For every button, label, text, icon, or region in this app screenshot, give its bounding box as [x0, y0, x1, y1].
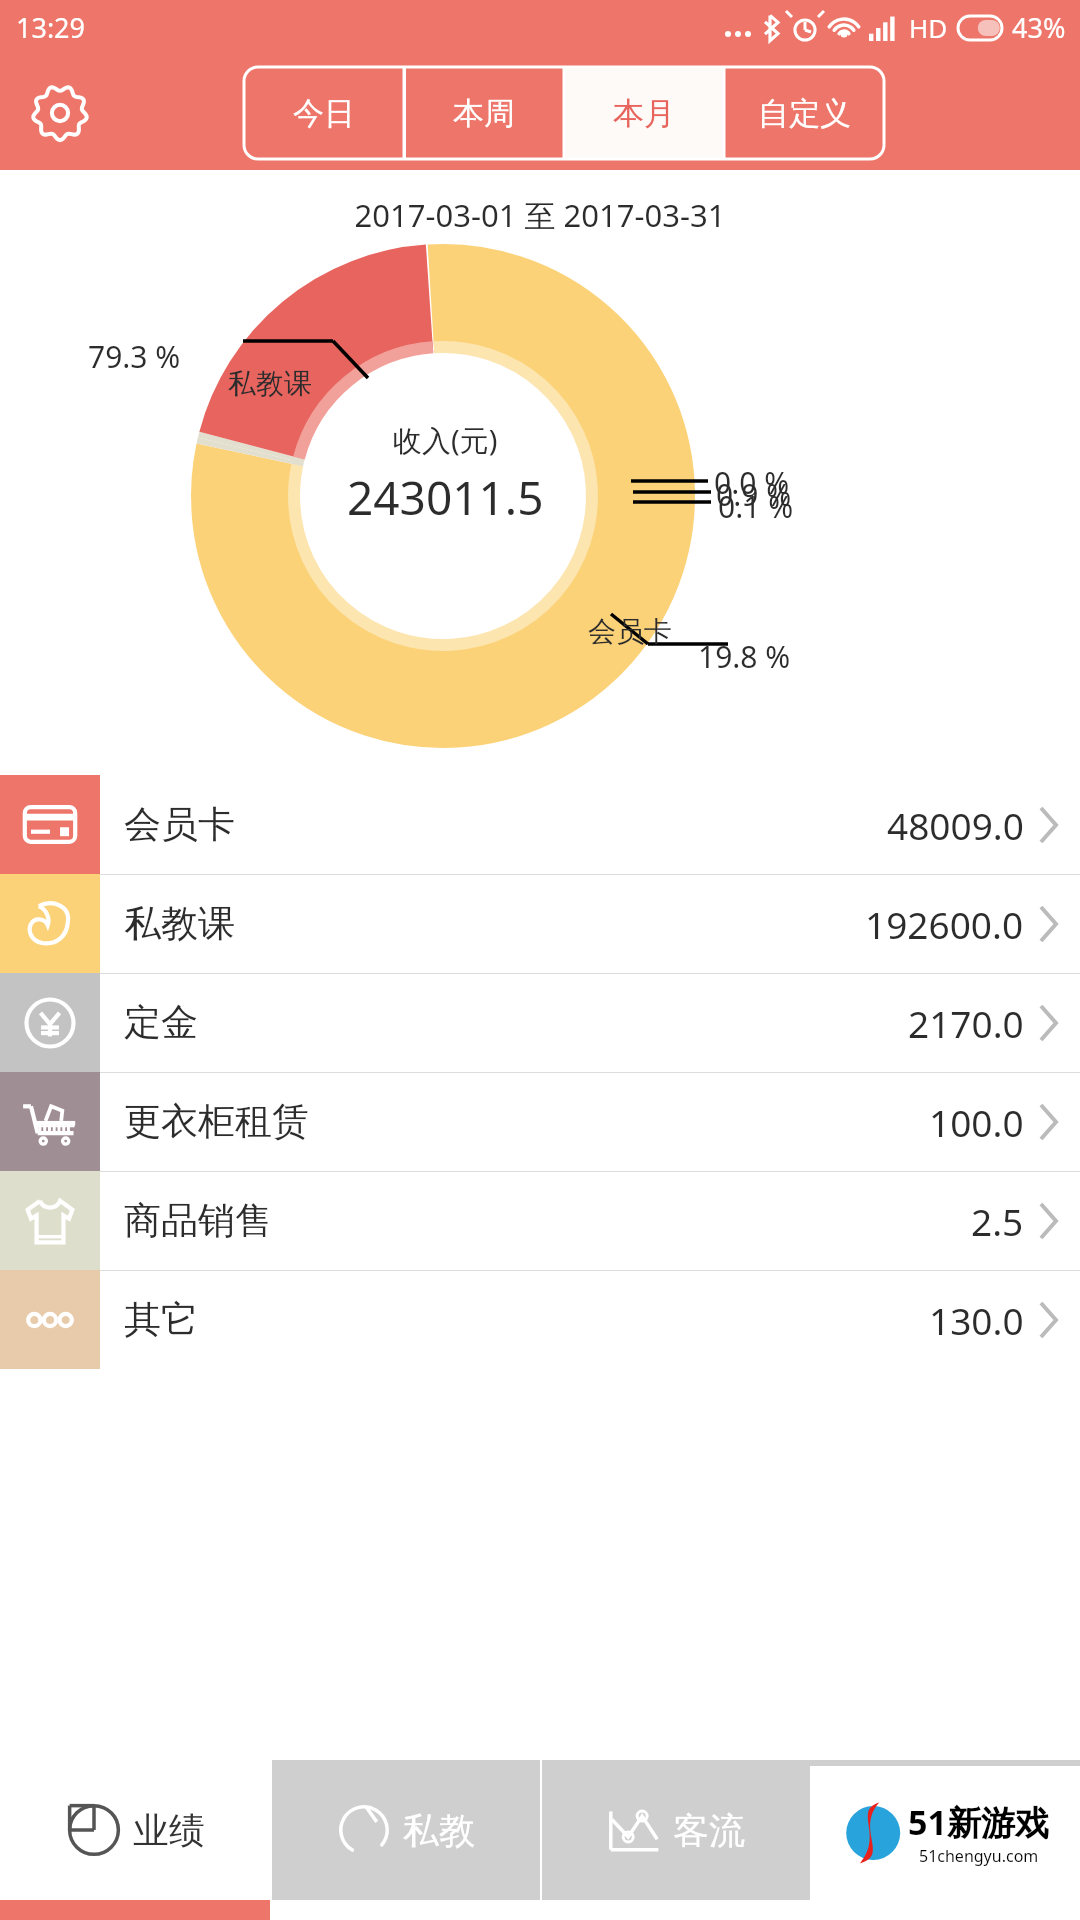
staticText: 私教课	[228, 366, 312, 401]
button[interactable]: 商品销售	[0, 1171, 1080, 1270]
staticText: 商品销售	[124, 1197, 272, 1244]
staticText: 19.8 %	[698, 636, 791, 677]
button[interactable]: Settings	[28, 81, 92, 145]
staticText: 100.0	[929, 1097, 1024, 1147]
staticText: 2170.0	[908, 998, 1024, 1048]
staticText: 自定义	[758, 94, 851, 133]
staticText: 0.9 %	[716, 474, 792, 515]
button[interactable]: 会员卡	[0, 775, 1080, 874]
button[interactable]: 更衣柜租赁	[0, 1072, 1080, 1171]
staticText: 13:29	[16, 9, 86, 46]
staticText: 79.3 %	[88, 336, 181, 377]
staticText: 51chengyu.com	[919, 1845, 1039, 1867]
staticText: 51新游戏	[908, 1799, 1049, 1845]
staticText: 会员卡	[124, 801, 235, 848]
button[interactable]: 其它	[0, 1270, 1080, 1369]
staticText: 本月	[613, 94, 675, 133]
staticText: 本周	[453, 94, 515, 133]
staticText: 定金	[124, 999, 198, 1046]
button[interactable]: 自定义	[724, 67, 884, 159]
staticText: 2.5	[971, 1196, 1024, 1246]
staticText: 私教	[403, 1808, 475, 1853]
staticText: 2017-03-01 至 2017-03-31	[0, 194, 1080, 236]
staticText: 私教课	[124, 900, 235, 947]
staticText: 今日	[293, 94, 355, 133]
button[interactable]: 定金	[0, 973, 1080, 1072]
staticText: 会员卡	[588, 614, 672, 649]
staticText: 192600.0	[865, 899, 1024, 949]
button[interactable]: 本月	[564, 67, 724, 159]
staticText: 客流	[673, 1808, 745, 1853]
button[interactable]: 本周	[404, 67, 564, 159]
staticText: 0.0 %	[714, 462, 790, 503]
button[interactable]: 客流	[540, 1760, 810, 1900]
staticText: 0.1 %	[718, 486, 794, 527]
staticText: HD	[909, 10, 948, 45]
staticText: 130.0	[929, 1295, 1024, 1345]
button[interactable]: 今日	[244, 67, 404, 159]
button[interactable]: 私教	[270, 1760, 540, 1900]
staticText: 48009.0	[887, 800, 1024, 850]
staticText: 收入(元)	[393, 420, 498, 460]
staticText: 243011.5	[347, 466, 544, 529]
staticText: 更衣柜租赁	[124, 1098, 309, 1145]
staticText: 业绩	[133, 1808, 205, 1853]
staticText: 其它	[124, 1296, 198, 1343]
button[interactable]: 私教课	[0, 874, 1080, 973]
staticText: 43%	[1012, 9, 1066, 46]
button[interactable]: 业绩	[0, 1760, 270, 1900]
